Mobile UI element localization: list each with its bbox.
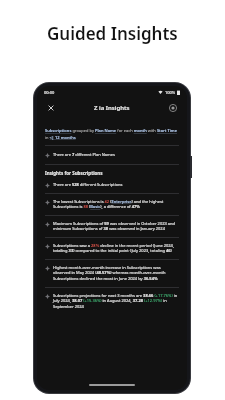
staticText: 100% bbox=[165, 90, 176, 95]
button[interactable]: There are 528 different Subscriptions bbox=[43, 181, 181, 189]
staticText: Maximum Subscriptions of 59 was observed… bbox=[53, 221, 179, 232]
button[interactable]: The lowest Subscriptions is 42 (Enterpri… bbox=[43, 198, 181, 211]
staticText: There are 528 different Subscriptions bbox=[53, 182, 123, 187]
staticText: Subscriptions saw a 28% decline in the r… bbox=[53, 243, 179, 254]
staticText: Subscriptions projections for next 3 mon… bbox=[53, 293, 179, 310]
button[interactable]: History bbox=[167, 102, 179, 114]
staticText: Subscriptions grouped by Plan Name for e… bbox=[45, 128, 179, 140]
button[interactable]: Close bbox=[45, 102, 57, 114]
staticText: The lowest Subscriptions is 42 (Enterpri… bbox=[53, 199, 179, 210]
button[interactable]: Subscriptions projections for next 3 mon… bbox=[43, 292, 181, 311]
staticText: Guided Insights bbox=[47, 22, 178, 45]
staticText: 00:00 bbox=[44, 90, 55, 95]
button[interactable]: Highest month-over-month increase in Sub… bbox=[43, 264, 181, 283]
staticText: Highest month-over-month increase in Sub… bbox=[53, 265, 179, 282]
staticText: There are 7 different Plan Names bbox=[53, 152, 115, 157]
button[interactable]: Subscriptions saw a 28% decline in the r… bbox=[43, 242, 181, 255]
button[interactable]: Maximum Subscriptions of 59 was observed… bbox=[43, 220, 181, 233]
staticText: Insights for Subscriptions bbox=[45, 170, 103, 176]
staticText: Z ia Insights bbox=[94, 104, 130, 112]
button[interactable]: There are 7 different Plan Names bbox=[43, 151, 181, 159]
